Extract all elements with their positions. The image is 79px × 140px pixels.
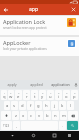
staticText: g <box>37 103 40 109</box>
button[interactable]: 3 <box>15 90 22 100</box>
staticText: l <box>70 103 72 109</box>
button[interactable]: Backspace <box>68 111 78 120</box>
staticText: 3 <box>18 91 20 94</box>
button[interactable]: h <box>43 101 50 110</box>
button[interactable]: Home <box>29 131 38 140</box>
staticText: h <box>45 103 48 109</box>
staticText: 6 <box>42 91 44 94</box>
button[interactable]: 2 <box>8 90 14 100</box>
button[interactable]: c <box>28 111 35 120</box>
staticText: , <box>16 123 17 128</box>
staticText: y <box>41 94 44 100</box>
staticText: 4 <box>26 91 28 94</box>
button[interactable]: 1 <box>1 90 7 100</box>
staticText: j <box>54 103 56 109</box>
button[interactable]: m <box>60 111 67 120</box>
button[interactable]: Clear search <box>70 6 77 13</box>
button[interactable]: d <box>19 101 26 110</box>
button[interactable]: 0 <box>71 90 78 100</box>
other: Application Lock icon <box>67 18 76 27</box>
staticText: c <box>30 113 33 119</box>
button[interactable]: Recents <box>50 131 59 140</box>
button[interactable]: j <box>51 101 58 110</box>
staticText: k <box>61 103 64 109</box>
button[interactable]: a <box>4 101 10 110</box>
button[interactable]: 5 <box>31 90 38 100</box>
staticText: p <box>73 94 76 100</box>
button[interactable]: Shift <box>1 111 11 120</box>
button[interactable]: l <box>67 101 74 110</box>
button[interactable]: f <box>27 101 34 110</box>
button[interactable]: 4 <box>23 90 30 100</box>
other: AppLocker icon <box>67 39 76 48</box>
staticText: applied <box>30 82 43 87</box>
staticText: lock your private applications <box>3 47 47 51</box>
staticText: 1 <box>4 91 6 94</box>
staticText: s <box>13 103 16 109</box>
staticText: d <box>21 103 24 109</box>
staticText: o <box>65 94 68 100</box>
button[interactable]: 7 <box>47 90 54 100</box>
button[interactable]: application <box>48 80 72 89</box>
staticText: AppLocker <box>3 39 31 46</box>
button[interactable]: v <box>36 111 43 120</box>
button[interactable]: x <box>20 111 27 120</box>
staticText: Application Lock <box>3 18 46 25</box>
button[interactable]: n <box>52 111 59 120</box>
staticText: . <box>62 123 63 128</box>
staticText: u <box>49 94 52 100</box>
staticText: 0 <box>74 91 76 94</box>
button[interactable]: s <box>11 101 18 110</box>
staticText: 9 <box>66 91 68 94</box>
button[interactable]: Application Lock <box>0 16 79 35</box>
staticText: r <box>26 94 28 100</box>
button[interactable]: k <box>59 101 66 110</box>
button[interactable]: Voice input <box>72 80 79 89</box>
button[interactable]: , <box>13 121 20 130</box>
staticText: v <box>38 113 41 119</box>
button[interactable]: z <box>12 111 19 120</box>
button[interactable]: Back <box>8 131 17 140</box>
staticText: application <box>51 82 70 87</box>
staticText: n <box>54 113 57 119</box>
staticText: x <box>22 113 25 119</box>
button[interactable]: ?123 <box>1 121 12 130</box>
button[interactable]: 6 <box>39 90 46 100</box>
staticText: e <box>17 94 20 100</box>
staticText: app <box>29 6 38 13</box>
staticText: apply <box>7 82 17 87</box>
staticText: b <box>46 113 49 119</box>
button[interactable]: Search <box>67 121 78 130</box>
button[interactable]: Menu <box>65 131 74 140</box>
staticText: 5 <box>34 91 36 94</box>
staticText: smart lockscreen app protect <box>3 26 47 30</box>
button[interactable]: 8 <box>55 90 62 100</box>
button[interactable]: g <box>35 101 42 110</box>
staticText: m <box>62 113 66 119</box>
button[interactable]: b <box>44 111 51 120</box>
staticText: 2 <box>10 91 12 94</box>
staticText: 8 <box>58 91 60 94</box>
button[interactable]: applied <box>24 80 48 89</box>
staticText: i <box>58 94 60 100</box>
staticText: f <box>30 103 32 109</box>
staticText: w <box>9 94 13 100</box>
staticText: q <box>3 94 6 100</box>
staticText: a <box>6 103 9 109</box>
button[interactable]: AppLocker <box>0 37 79 56</box>
button[interactable]: apply <box>0 80 24 89</box>
staticText: t <box>34 94 36 100</box>
button[interactable]: 9 <box>63 90 70 100</box>
staticText: 7 <box>50 91 52 94</box>
staticText: ?123 <box>3 124 10 128</box>
staticText: z <box>15 113 17 119</box>
button[interactable]: Back <box>2 6 9 13</box>
